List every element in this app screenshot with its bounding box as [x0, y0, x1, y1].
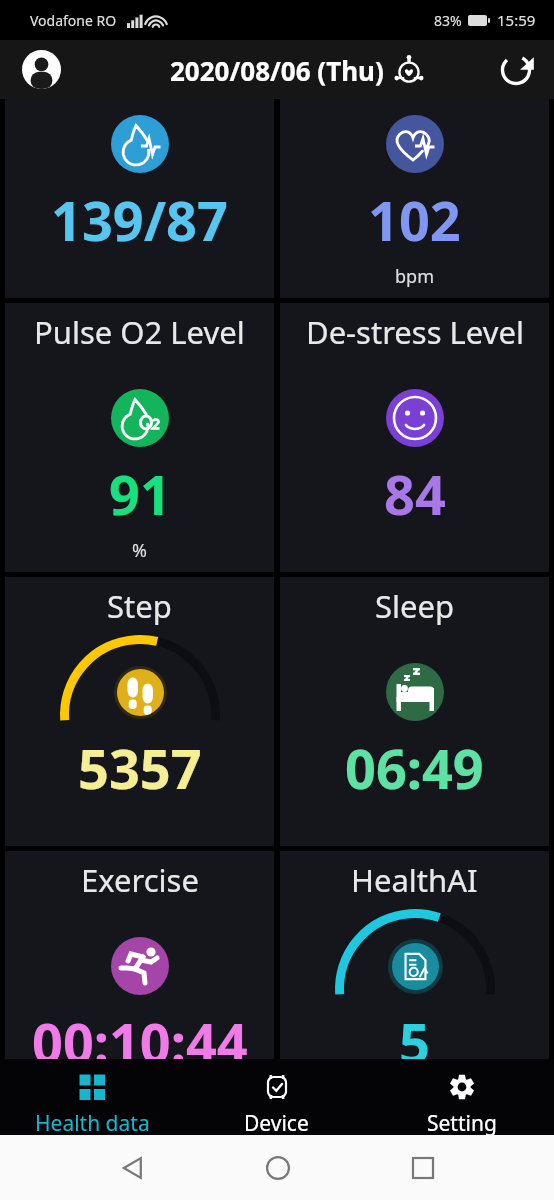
button[interactable]: HealthAI [280, 851, 549, 1059]
button[interactable]: Blood pressure [5, 99, 274, 298]
button[interactable]: Setting [369, 1059, 554, 1135]
button[interactable]: Step [5, 577, 274, 846]
button[interactable]: Device [184, 1059, 369, 1135]
staticText: HealthAI [351, 859, 478, 901]
staticText: 00:10:44 [32, 1005, 248, 1059]
staticText: Device [244, 1109, 309, 1135]
button[interactable]: Heart rate [280, 99, 549, 298]
button[interactable]: Device [390, 51, 428, 89]
button[interactable]: Exercise [5, 851, 274, 1059]
button[interactable]: Profile [22, 50, 61, 89]
staticText: 5357 [78, 731, 202, 805]
staticText: % [132, 538, 147, 563]
staticText: 2020/08/06 (Thu) [170, 53, 384, 88]
button[interactable]: Health data [0, 1059, 184, 1135]
staticText: 139/87 [51, 183, 228, 257]
staticText: Setting [427, 1109, 497, 1135]
button[interactable]: Sleep [280, 577, 549, 846]
staticText: Pulse O2 Level [34, 311, 245, 353]
staticText: 15:59 [497, 10, 536, 30]
staticText: Step [107, 585, 172, 627]
staticText: De-stress Level [306, 311, 524, 353]
button[interactable]: De-stress Level [280, 303, 549, 572]
button[interactable]: Pulse O2 Level [5, 303, 274, 572]
staticText: Sleep [375, 585, 455, 627]
staticText: 102 [368, 183, 461, 257]
staticText: Exercise [81, 859, 199, 901]
staticText: 06:49 [345, 731, 484, 805]
button[interactable]: Refresh [498, 52, 534, 88]
staticText: 84 [384, 457, 446, 531]
staticText: Health data [35, 1109, 150, 1135]
staticText: 5 [399, 1005, 430, 1059]
staticText: 83% [434, 11, 462, 30]
staticText: Vodafone RO [30, 11, 117, 30]
staticText: 91 [109, 457, 171, 531]
staticText: bpm [395, 264, 434, 289]
